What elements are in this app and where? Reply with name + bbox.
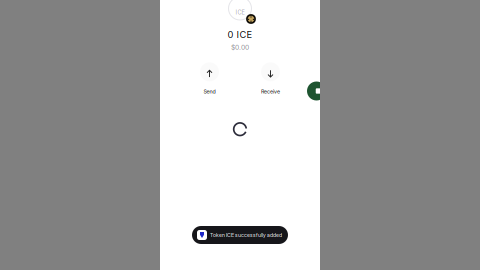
button[interactable]: Support chat	[307, 81, 326, 100]
staticText: Receive	[261, 88, 280, 95]
staticText: $0.00	[231, 43, 249, 51]
staticText: ICE	[235, 9, 244, 16]
staticText: Send	[203, 88, 215, 95]
button[interactable]: Send	[192, 62, 226, 95]
button[interactable]: Receive	[253, 62, 287, 95]
staticText: Token ICE successfully added	[210, 232, 282, 238]
staticText: 0 ICE	[227, 29, 252, 40]
